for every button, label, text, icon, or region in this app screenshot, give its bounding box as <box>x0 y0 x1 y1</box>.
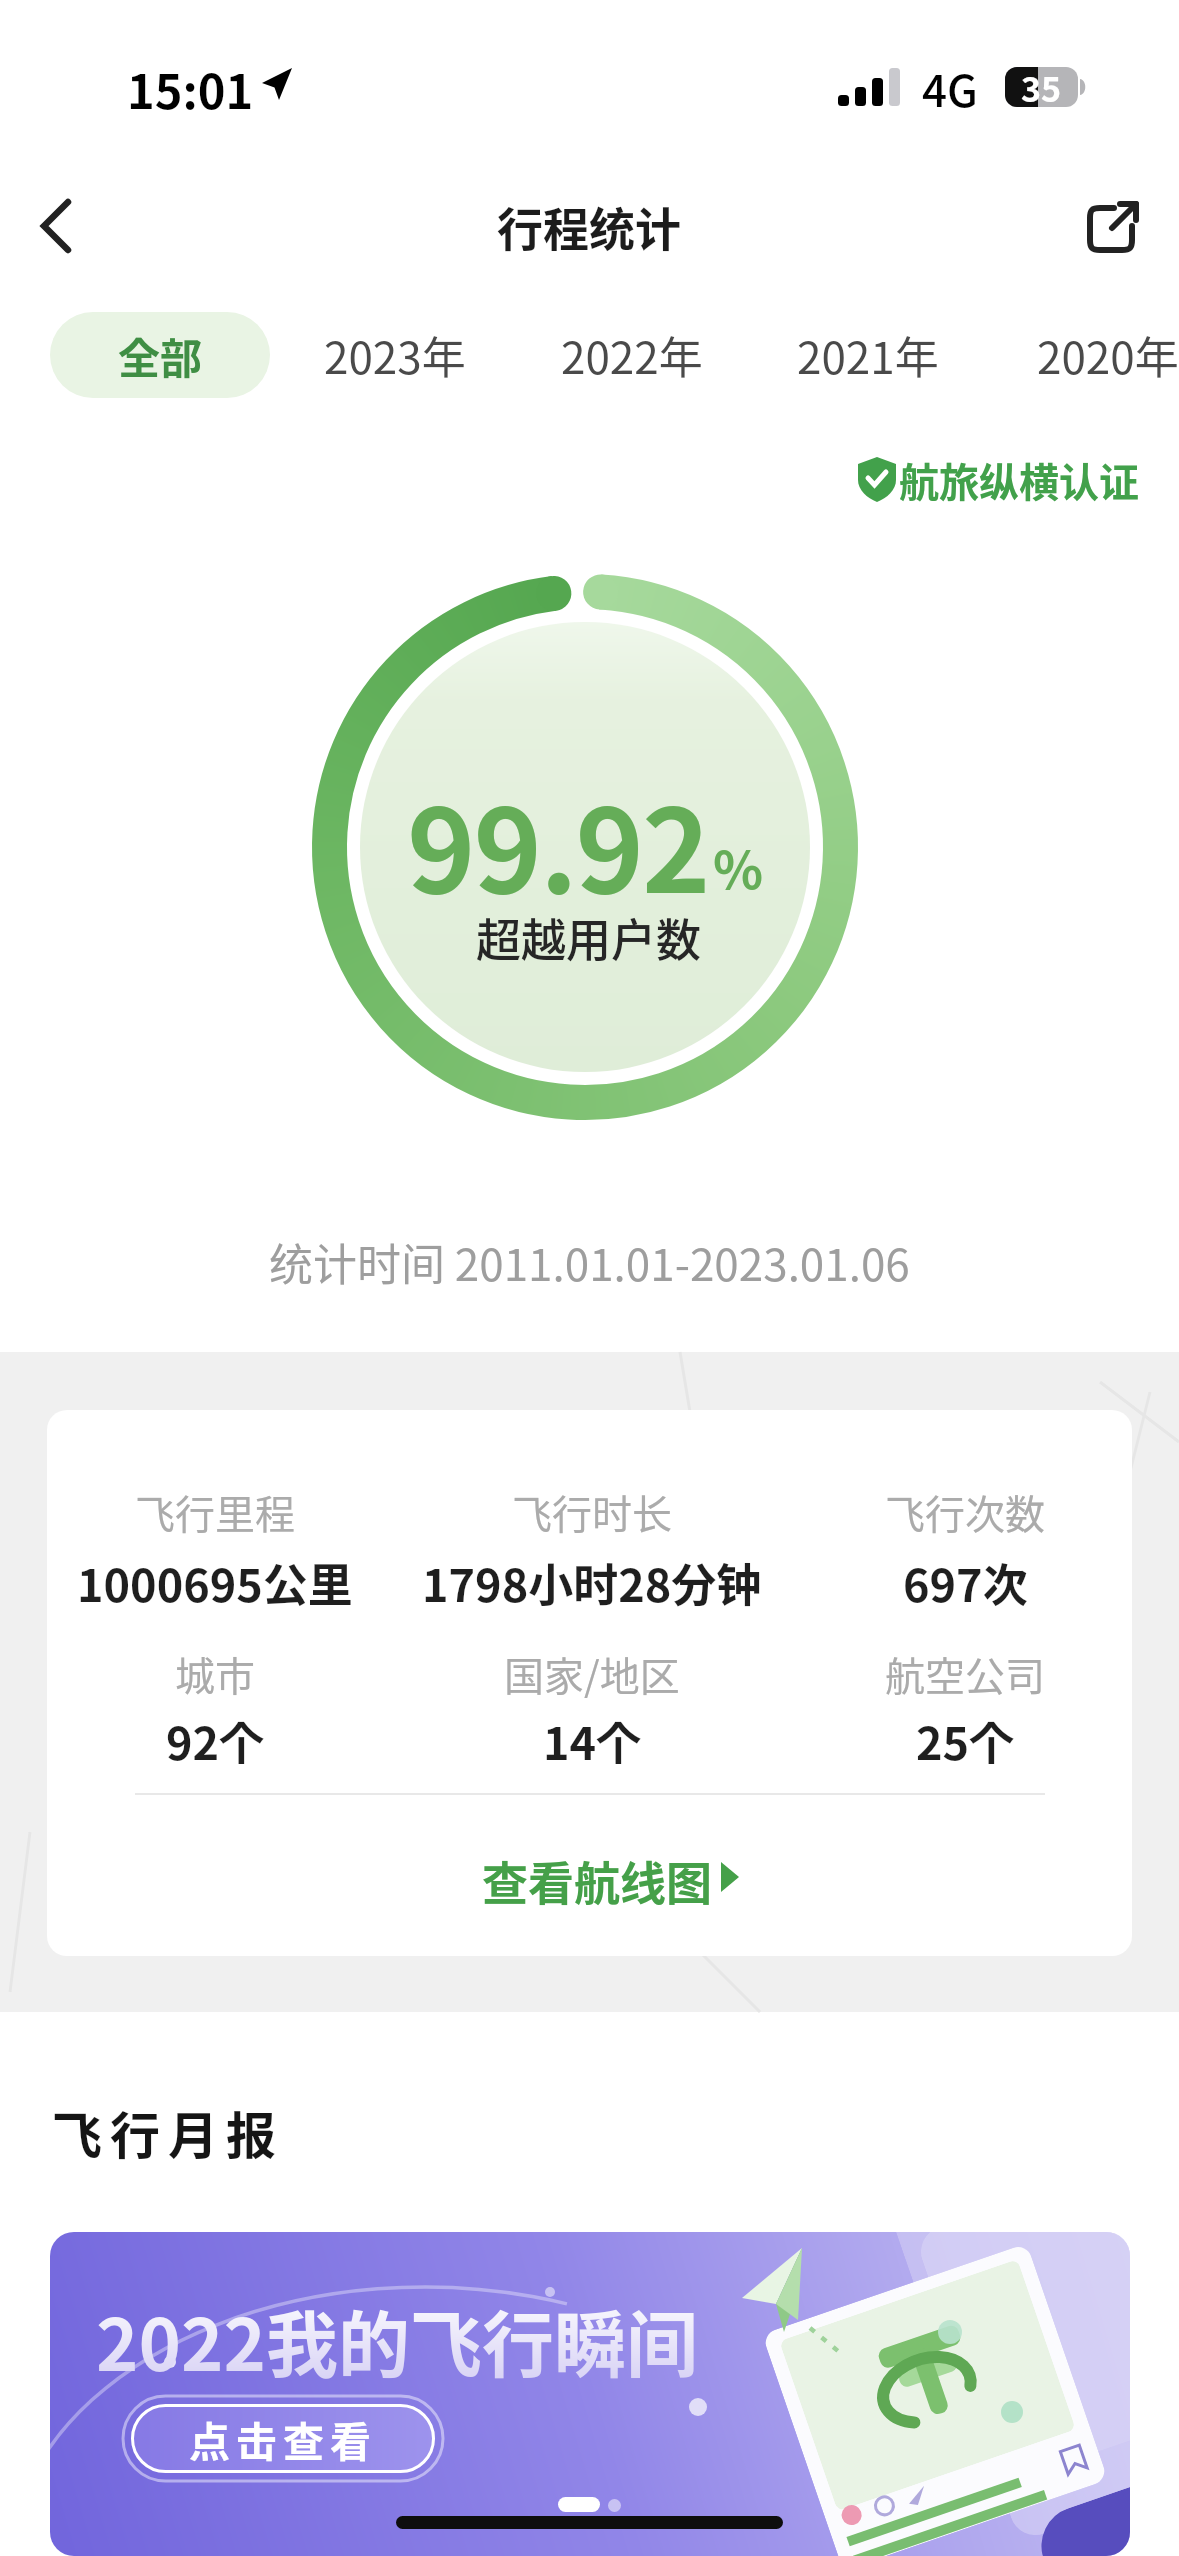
staticText: 飞行次数 <box>885 1483 1045 1541</box>
staticText: 飞行月报 <box>52 2096 284 2166</box>
staticText: 697次 <box>903 1550 1028 1615</box>
staticText: 35 <box>1021 63 1062 112</box>
button[interactable]: 点击查看 <box>131 2404 435 2473</box>
staticText: 14个 <box>543 1708 642 1773</box>
staticText: 2021年 <box>797 323 939 387</box>
staticText: 1798小时28分钟 <box>422 1550 762 1615</box>
button[interactable]: 2021年 <box>748 305 988 405</box>
staticText: 点击查看 <box>189 2409 377 2468</box>
staticText: 航旅纵横认证 <box>899 451 1139 509</box>
staticText: 92个 <box>166 1708 265 1773</box>
button[interactable]: 2020年 <box>988 305 1179 405</box>
staticText: 2020年 <box>1037 323 1179 387</box>
staticText: 飞行里程 <box>135 1483 295 1541</box>
staticText: 飞行时长 <box>512 1483 672 1541</box>
staticText: 2022年 <box>561 323 703 387</box>
button[interactable]: 2022我的飞行瞬间 <box>50 2232 1130 2556</box>
staticText: 15:01 <box>127 54 254 122</box>
staticText: 超越用户数 <box>476 905 702 970</box>
staticText: 国家/地区 <box>504 1645 680 1703</box>
staticText: 统计时间 2011.01.01-2023.01.06 <box>269 1230 910 1294</box>
button[interactable]: 2022年 <box>512 305 752 405</box>
staticText: 99.92 <box>407 758 709 926</box>
staticText: 4G <box>922 56 978 120</box>
button[interactable]: 2023年 <box>275 305 515 405</box>
staticText: 2023年 <box>324 323 466 387</box>
button[interactable] <box>1080 192 1150 262</box>
staticText: 航空公司 <box>885 1645 1045 1703</box>
staticText: % <box>713 829 764 904</box>
staticText: 2022我的飞行瞬间 <box>96 2287 698 2391</box>
button[interactable]: 查看航线图 <box>437 1840 757 1920</box>
staticText: 25个 <box>916 1708 1015 1773</box>
button[interactable]: 全部 <box>50 312 270 398</box>
staticText: 1000695公里 <box>77 1550 353 1615</box>
button[interactable] <box>24 190 94 262</box>
staticText: 查看航线图 <box>482 1847 712 1914</box>
staticText: 全部 <box>118 325 203 386</box>
staticText: 城市 <box>175 1645 255 1703</box>
staticText: 行程统计 <box>497 193 681 260</box>
